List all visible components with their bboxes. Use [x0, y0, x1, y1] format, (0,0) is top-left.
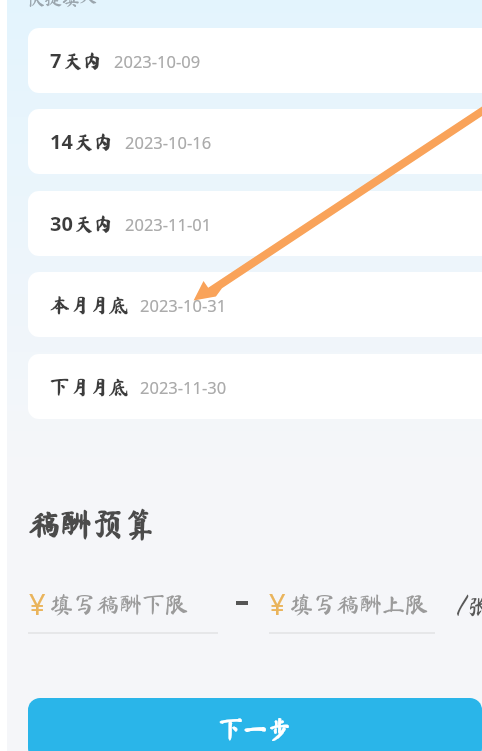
staticText: 填写稿酬上限: [290, 593, 428, 616]
staticText: 30: [50, 210, 73, 237]
staticText: 7: [50, 47, 62, 74]
button[interactable]: 本月月底: [28, 272, 482, 337]
button[interactable]: 下月月底: [28, 354, 482, 419]
staticText: 14: [50, 128, 73, 155]
staticText: ¥: [269, 584, 286, 623]
staticText: 稿酬预算: [28, 508, 157, 540]
staticText: 2023-11-30: [140, 376, 227, 398]
staticText: 2023-10-31: [140, 294, 227, 316]
staticText: 下一步: [219, 717, 292, 741]
staticText: 2023-10-09: [114, 50, 201, 72]
staticText: 天内: [74, 214, 114, 233]
staticText: 天内: [63, 51, 103, 70]
staticText: 填写稿酬下限: [50, 593, 188, 616]
staticText: 快捷填入: [27, 0, 97, 7]
button[interactable]: 30: [28, 191, 482, 256]
staticText: 2023-10-16: [125, 131, 212, 153]
staticText: ¥: [29, 584, 46, 623]
staticText: 天内: [74, 132, 114, 151]
button[interactable]: 7: [28, 28, 482, 93]
button[interactable]: 下一步: [28, 698, 482, 751]
staticText: 下月月底: [50, 377, 129, 396]
staticText: /张: [457, 595, 482, 618]
button[interactable]: 14: [28, 109, 482, 174]
staticText: 本月月底: [50, 295, 129, 314]
staticText: 2023-11-01: [125, 213, 212, 235]
